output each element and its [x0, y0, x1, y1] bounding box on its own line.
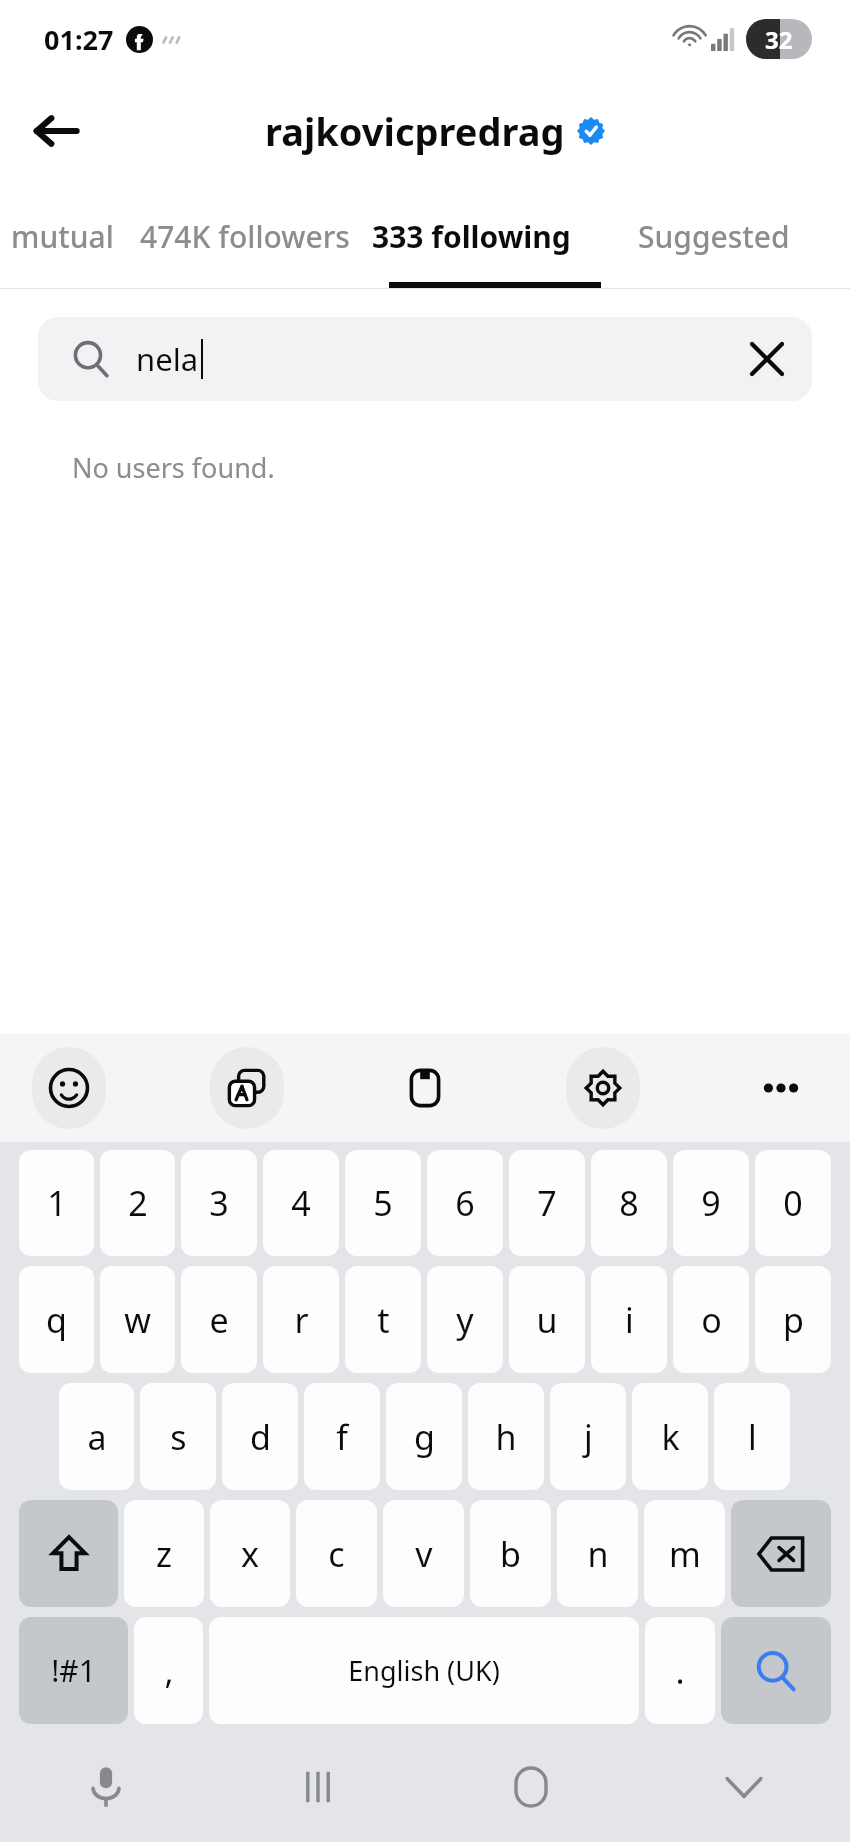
staticText: p	[783, 1297, 804, 1343]
button[interactable]: d	[222, 1383, 298, 1490]
staticText: 4	[291, 1180, 311, 1226]
button[interactable]: Back	[20, 95, 92, 167]
staticText: a	[87, 1414, 107, 1460]
button[interactable]: 0	[755, 1150, 831, 1256]
staticText: 474K followers	[140, 216, 350, 257]
button[interactable]: h	[468, 1383, 544, 1490]
staticText: t	[377, 1297, 390, 1343]
staticText: h	[495, 1414, 517, 1460]
button[interactable]: More options	[744, 1047, 818, 1129]
staticText: .	[675, 1648, 685, 1694]
button[interactable]: g	[386, 1383, 462, 1490]
button[interactable]: .	[645, 1617, 715, 1724]
staticText: i	[625, 1297, 634, 1343]
staticText: 3	[209, 1180, 229, 1226]
button[interactable]: s	[140, 1383, 216, 1490]
button[interactable]: 9	[673, 1150, 749, 1256]
button[interactable]: Emoji	[32, 1047, 106, 1129]
button[interactable]: !#1	[19, 1617, 128, 1724]
button[interactable]: 6	[427, 1150, 503, 1256]
staticText: nela	[136, 338, 199, 380]
button[interactable]: z	[124, 1500, 204, 1607]
button[interactable]: m	[644, 1500, 725, 1607]
staticText: d	[250, 1414, 271, 1460]
button[interactable]: 7	[509, 1150, 585, 1256]
button[interactable]: Settings	[566, 1047, 640, 1129]
button[interactable]: Home	[424, 1732, 637, 1842]
button[interactable]: Voice input	[0, 1732, 212, 1842]
button[interactable]: l	[714, 1383, 790, 1490]
staticText: !#1	[51, 1650, 96, 1691]
button[interactable]: Translate	[210, 1047, 284, 1129]
button[interactable]: p	[755, 1266, 831, 1373]
button[interactable]: x	[210, 1500, 290, 1607]
staticText: z	[156, 1531, 172, 1577]
staticText: n	[587, 1531, 609, 1577]
button[interactable]: Recent apps	[212, 1732, 424, 1842]
button[interactable]: 3	[181, 1150, 257, 1256]
staticText: English (UK)	[348, 1652, 500, 1689]
staticText: 1	[47, 1180, 67, 1226]
staticText: m	[669, 1531, 701, 1577]
button[interactable]: 2	[100, 1150, 175, 1256]
button[interactable]: k	[632, 1383, 708, 1490]
button[interactable]: Clear search	[732, 324, 802, 394]
button[interactable]: f	[304, 1383, 380, 1490]
button[interactable]: i	[591, 1266, 667, 1373]
staticText: Suggested	[638, 216, 790, 257]
staticText: 32	[765, 23, 793, 56]
button[interactable]: 8	[591, 1150, 667, 1256]
staticText: l	[748, 1414, 757, 1460]
button[interactable]: 5	[345, 1150, 421, 1256]
button[interactable]: Shift	[19, 1500, 118, 1607]
button[interactable]: Suggested	[577, 184, 850, 289]
button[interactable]: c	[296, 1500, 377, 1607]
button[interactable]: 333 following	[365, 184, 577, 289]
staticText: k	[661, 1414, 680, 1460]
staticText: 7	[537, 1180, 557, 1226]
staticText: f	[336, 1414, 348, 1460]
button[interactable]: e	[181, 1266, 257, 1373]
button[interactable]: ,	[134, 1617, 203, 1724]
button[interactable]: Backspace	[731, 1500, 831, 1607]
staticText: rajkovicpredrag	[265, 105, 565, 157]
button[interactable]: y	[427, 1266, 503, 1373]
button[interactable]: a	[59, 1383, 134, 1490]
button[interactable]: English (UK)	[209, 1617, 639, 1724]
button[interactable]: j	[550, 1383, 626, 1490]
staticText: 6	[455, 1180, 475, 1226]
staticText: s	[170, 1414, 187, 1460]
button[interactable]: 474K followers	[125, 184, 365, 289]
staticText: g	[414, 1414, 435, 1460]
button[interactable]: v	[383, 1500, 464, 1607]
button[interactable]: n	[557, 1500, 638, 1607]
staticText: x	[241, 1531, 259, 1577]
staticText: 5	[373, 1180, 393, 1226]
button[interactable]: Clipboard	[388, 1047, 462, 1129]
button[interactable]: b	[470, 1500, 551, 1607]
button[interactable]: 4	[263, 1150, 339, 1256]
staticText: c	[328, 1531, 345, 1577]
button[interactable]: nela	[38, 317, 812, 401]
button[interactable]: q	[19, 1266, 94, 1373]
button[interactable]: w	[100, 1266, 175, 1373]
button[interactable]: mutual	[0, 184, 125, 289]
button[interactable]: u	[509, 1266, 585, 1373]
staticText: No users found.	[72, 449, 275, 486]
staticText: 333 following	[372, 216, 571, 257]
staticText: j	[584, 1414, 593, 1460]
staticText: 0	[783, 1180, 803, 1226]
button[interactable]: Hide keyboard	[637, 1732, 850, 1842]
staticText: y	[456, 1297, 474, 1343]
staticText: 2	[128, 1180, 148, 1226]
staticText: mutual	[11, 216, 114, 257]
staticText: 8	[619, 1180, 639, 1226]
button[interactable]: 1	[19, 1150, 94, 1256]
staticText: w	[124, 1297, 151, 1343]
button[interactable]: Search	[721, 1617, 831, 1724]
button[interactable]: r	[263, 1266, 339, 1373]
staticText: v	[415, 1531, 433, 1577]
button[interactable]: o	[673, 1266, 749, 1373]
button[interactable]: t	[345, 1266, 421, 1373]
staticText: r	[294, 1297, 309, 1343]
